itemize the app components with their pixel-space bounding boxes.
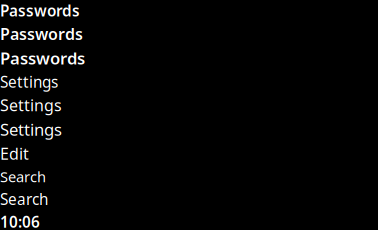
- staticText: Settings: [0, 71, 58, 92]
- staticText: Settings: [0, 94, 62, 116]
- staticText: Search: [0, 166, 46, 186]
- staticText: Passwords: [0, 47, 85, 69]
- staticText: Passwords: [0, 23, 83, 45]
- staticText: Passwords: [0, 0, 80, 21]
- staticText: 10:06: [0, 211, 40, 230]
- staticText: Settings: [0, 118, 62, 141]
- staticText: Search: [0, 188, 48, 209]
- staticText: Edit: [0, 143, 29, 165]
